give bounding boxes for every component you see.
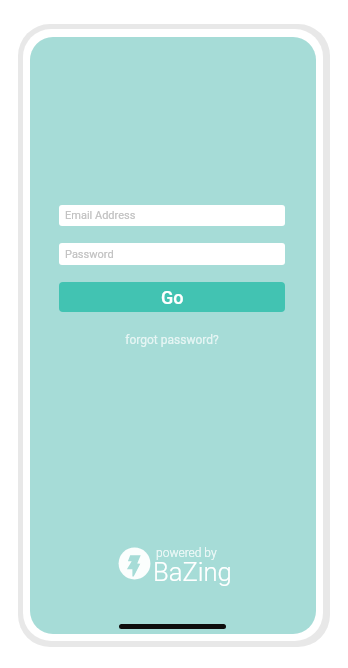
staticText: Email Address	[65, 209, 136, 222]
button[interactable]: forgot password?	[59, 330, 285, 350]
other: Home	[119, 624, 226, 629]
staticText: powered by	[156, 546, 217, 560]
staticText: Password	[65, 248, 114, 261]
button[interactable]: powered by BaZing	[118, 542, 230, 584]
button[interactable]: Password	[59, 243, 285, 265]
staticText: Go	[161, 287, 184, 308]
staticText: BaZing	[153, 557, 232, 587]
staticText: forgot password?	[125, 333, 219, 347]
button[interactable]: Go	[59, 282, 285, 312]
button[interactable]: Email Address	[59, 205, 285, 226]
